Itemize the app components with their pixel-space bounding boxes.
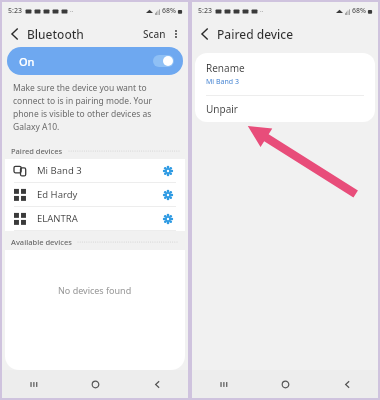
staticText: 5:23 <box>198 6 212 16</box>
button[interactable]: On <box>7 47 183 75</box>
staticText: 68% <box>162 6 176 16</box>
button[interactable]: Back <box>6 25 24 43</box>
staticText: On <box>19 54 35 69</box>
button[interactable]: Scan <box>143 27 166 41</box>
button[interactable]: Ed Hardy <box>5 183 185 206</box>
button[interactable]: Unpair <box>195 96 375 122</box>
button[interactable]: Mi Band 3 <box>5 159 185 182</box>
button[interactable]: Settings for Mi Band 3 <box>161 164 175 178</box>
staticText: Ed Hardy <box>37 188 161 201</box>
staticText: Bluetooth <box>27 26 84 42</box>
button[interactable]: Home <box>254 370 316 398</box>
staticText: Mi Band 3 <box>206 77 239 87</box>
button[interactable]: Back <box>316 370 378 398</box>
staticText: Paired device <box>217 26 294 42</box>
staticText: No devices found <box>58 284 132 296</box>
staticText: Mi Band 3 <box>37 164 161 177</box>
staticText: Paired devices <box>11 146 63 156</box>
staticText: 68% <box>352 6 366 16</box>
staticText: ELANTRA <box>37 212 161 225</box>
button[interactable]: Recent apps <box>2 370 64 398</box>
button[interactable]: ELANTRA <box>5 207 185 230</box>
staticText: Unpair <box>206 102 238 116</box>
button[interactable]: Rename <box>195 53 375 95</box>
staticText: Scan <box>143 27 166 41</box>
staticText: Make sure the device you want to connect… <box>13 82 177 133</box>
staticText: ·· <box>260 7 264 15</box>
button[interactable]: Settings for ELANTRA <box>161 212 175 226</box>
button[interactable]: Home <box>64 370 126 398</box>
staticText: Available devices <box>11 237 72 247</box>
button[interactable]: Recent apps <box>192 370 254 398</box>
button[interactable]: Back <box>126 370 188 398</box>
staticText: 5:23 <box>8 6 22 16</box>
button[interactable]: Back <box>196 25 214 43</box>
button[interactable]: Settings for Ed Hardy <box>161 188 175 202</box>
button[interactable]: More options <box>168 26 184 42</box>
staticText: Rename <box>206 61 245 75</box>
staticText: ·· <box>70 7 74 15</box>
